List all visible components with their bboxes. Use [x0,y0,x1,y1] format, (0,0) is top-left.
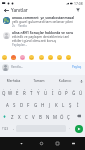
button[interactable]: 6 [35,86,42,98]
button[interactable]: Emoji reaction [29,55,34,60]
staticText: Z [11,114,14,120]
staticText: İ [77,102,79,108]
staticText: Yanıtlar [11,7,28,13]
button[interactable]: 9 [56,86,63,98]
button[interactable]: Ö [58,110,65,122]
staticText: 1 [3,88,5,91]
staticText: . [69,125,70,130]
button[interactable]: M [51,110,58,122]
staticText: U [44,90,48,96]
staticText: 9 [59,88,61,91]
staticText: C [25,114,28,120]
button[interactable]: H [39,98,46,110]
button[interactable]: N [44,110,51,122]
button[interactable]: Tamam [26,79,52,83]
button[interactable]: Emoji reaction [2,55,7,60]
button[interactable]: Emoji reaction [66,55,71,60]
staticText: 2 [10,88,12,91]
button[interactable]: 0 [63,86,70,98]
button[interactable]: Paylaş [72,65,82,69]
button[interactable]: Ğ [70,86,77,98]
button[interactable]: ?123 [0,122,11,135]
button[interactable]: Recents [53,139,61,147]
button[interactable]: 2 [7,86,14,98]
button[interactable]: 4 [21,86,28,98]
staticText: S [13,102,16,108]
button[interactable]: G [32,98,39,110]
staticText: 8 [52,88,54,91]
button[interactable]: Emoji reaction [48,55,53,60]
button[interactable]: X [16,110,23,122]
staticText: Yanıtla... [11,65,72,69]
button[interactable]: , [11,122,16,135]
staticText: Ü [79,90,83,96]
button[interactable]: 1 [0,86,7,98]
button[interactable]: 5 [28,86,35,98]
button[interactable]: Filter [74,6,82,14]
button[interactable]: K [53,98,60,110]
button[interactable]: Profile photo [3,17,10,24]
button[interactable]: J [46,98,53,110]
staticText: 4 [24,88,26,91]
button[interactable]: Shift [0,110,9,122]
button[interactable]: Ü [77,86,84,98]
staticText: 0 [66,88,68,91]
staticText: yelk guzel gulumsedi tam onlarıar pikni [12,19,73,23]
button[interactable]: Merhaba [1,79,26,83]
staticText: alisa.n8H1 Sonuçlar hakkında ve soru [12,30,74,34]
button[interactable]: 8 [49,86,56,98]
staticText: V [32,114,35,120]
staticText: D [20,102,24,108]
button[interactable]: F [25,98,32,110]
staticText: etkinlik ve paylaşım desteklerinizi anl [12,34,70,38]
button[interactable]: Back [2,6,10,14]
button[interactable]: İ [74,98,81,110]
button[interactable]: Profile photo [3,32,10,39]
button[interactable]: S [11,98,18,110]
staticText: X [18,114,21,120]
staticText: F [27,102,30,108]
button[interactable]: Emoji reaction [39,55,44,60]
staticText: H [41,102,45,108]
staticText: 7 [45,88,47,91]
button[interactable]: C [23,110,30,122]
staticText: 6 [38,88,40,91]
button[interactable]: Kullanıcı [52,79,78,83]
button[interactable]: L [60,98,67,110]
button[interactable]: B [37,110,44,122]
staticText: P [65,90,68,96]
button[interactable]: Voice input [78,78,84,84]
staticText: Paylaşılan... [12,43,28,47]
button[interactable]: Ş [67,98,74,110]
staticText: , [13,125,14,130]
staticText: Y [37,90,40,96]
button[interactable]: Emoji reaction [57,55,62,60]
staticText: Ö [60,114,64,120]
staticText: Ş [69,102,72,108]
staticText: O [58,90,62,96]
staticText: W [8,90,13,96]
button[interactable]: V [30,110,37,122]
button[interactable]: Backspace [72,110,85,122]
button[interactable]: D [18,98,25,110]
button[interactable]: Send [72,122,85,135]
button[interactable]: Hide keyboard [17,139,25,147]
button[interactable]: Emoji reaction [20,55,25,60]
button[interactable]: Ç [65,110,72,122]
staticText: 3 [17,88,19,91]
button[interactable]: 3 [14,86,21,98]
button[interactable]: 7 [42,86,49,98]
button[interactable]: A [4,98,11,110]
staticText: Ç [67,114,70,120]
button[interactable]: Z [9,110,16,122]
staticText: R [23,90,26,96]
staticText: N [46,114,50,120]
staticText: M [53,114,57,120]
staticText: L [62,102,65,108]
button[interactable]: Home [37,139,45,147]
button[interactable]: Emoji reaction [11,55,16,60]
button[interactable]: Switch keyboard [69,139,77,147]
staticText: 2s Yanıtla [12,24,27,28]
